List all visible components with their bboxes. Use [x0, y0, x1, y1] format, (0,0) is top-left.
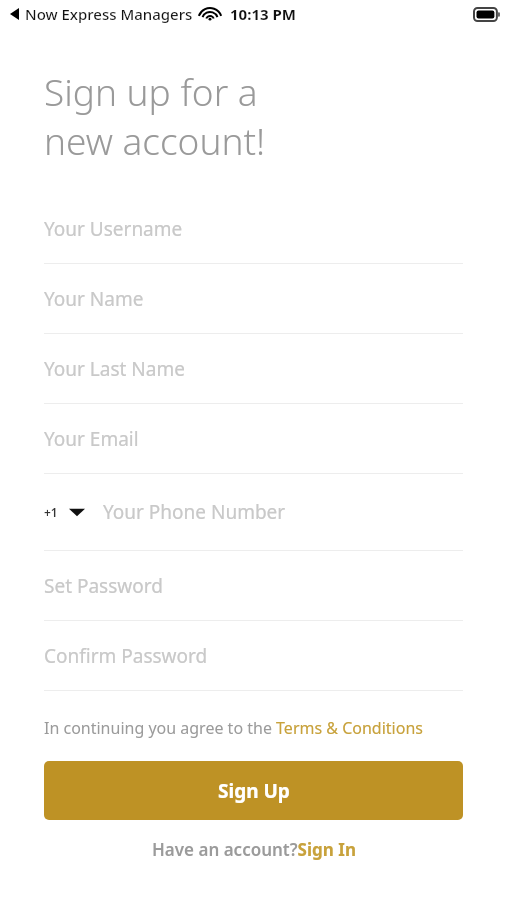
- button[interactable]: +1: [44, 474, 463, 551]
- staticText: Set Password: [44, 573, 163, 599]
- staticText: 10:13 PM: [230, 4, 296, 24]
- button[interactable]: Your Username: [44, 194, 463, 264]
- staticText: Your Phone Number: [103, 499, 286, 525]
- button[interactable]: Confirm Password: [44, 621, 463, 691]
- staticText: Sign up for a new account!: [44, 66, 266, 166]
- button[interactable]: Have an account?Sign In: [152, 838, 356, 861]
- staticText: Confirm Password: [44, 643, 208, 669]
- staticText: Your Email: [44, 426, 139, 452]
- button[interactable]: Set Password: [44, 551, 463, 621]
- staticText: Your Username: [44, 216, 183, 242]
- other: Select country code: [69, 506, 85, 518]
- button[interactable]: Your Last Name: [44, 334, 463, 404]
- button[interactable]: Sign Up: [44, 761, 463, 820]
- staticText: Your Name: [44, 286, 144, 312]
- staticText: +1: [44, 504, 58, 520]
- button[interactable]: In continuing you agree to the Terms & C…: [44, 717, 423, 739]
- staticText: Sign Up: [218, 778, 290, 804]
- button[interactable]: Your Name: [44, 264, 463, 334]
- staticText: Your Last Name: [44, 356, 185, 382]
- button[interactable]: Your Email: [44, 404, 463, 474]
- staticText: Now Express Managers: [25, 4, 193, 24]
